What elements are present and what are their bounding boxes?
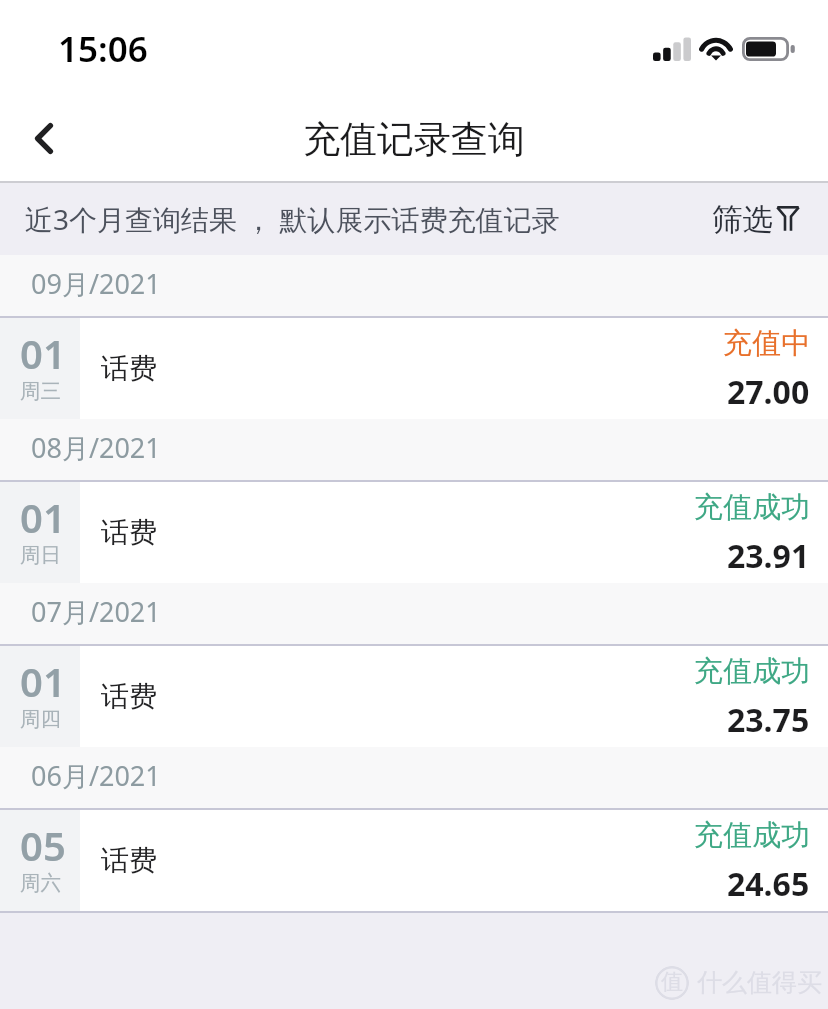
staticText: 15:06 — [58, 25, 148, 73]
staticText: 筛选 — [712, 201, 773, 239]
button[interactable]: 05 — [0, 810, 828, 911]
staticText: 周三 — [20, 378, 61, 404]
staticText: 08月/2021 — [31, 429, 161, 466]
staticText: 什么值得买 — [697, 967, 822, 998]
staticText: 23.75 — [727, 698, 810, 742]
staticText: 话费 — [101, 351, 157, 386]
staticText: 24.65 — [727, 862, 810, 906]
staticText: 话费 — [101, 843, 157, 878]
staticText: 27.00 — [727, 370, 810, 414]
button[interactable]: 01 — [0, 318, 828, 419]
button[interactable]: 筛选 — [698, 183, 828, 255]
button[interactable]: Back — [0, 96, 88, 181]
staticText: 值 — [661, 968, 683, 996]
staticText: 01 — [20, 490, 66, 544]
staticText: 07月/2021 — [31, 593, 161, 630]
staticText: 01 — [20, 326, 66, 380]
staticText: 01 — [20, 654, 66, 708]
staticText: 话费 — [101, 515, 157, 550]
staticText: 近3个月查询结果 ， 默认展示话费充值记录 — [25, 200, 560, 238]
staticText: 充值成功 — [694, 653, 810, 690]
staticText: 05 — [20, 818, 66, 872]
staticText: 充值成功 — [694, 817, 810, 854]
staticText: 充值记录查询 — [303, 116, 525, 163]
staticText: 充值中 — [723, 325, 810, 362]
staticText: 充值成功 — [694, 489, 810, 526]
button[interactable]: 01 — [0, 482, 828, 583]
staticText: 周日 — [20, 542, 61, 568]
staticText: 06月/2021 — [31, 757, 161, 794]
staticText: 周四 — [20, 706, 61, 732]
staticText: 周六 — [20, 870, 61, 896]
button[interactable]: 01 — [0, 646, 828, 747]
staticText: 话费 — [101, 679, 157, 714]
staticText: 23.91 — [727, 534, 810, 578]
staticText: 09月/2021 — [31, 265, 161, 302]
